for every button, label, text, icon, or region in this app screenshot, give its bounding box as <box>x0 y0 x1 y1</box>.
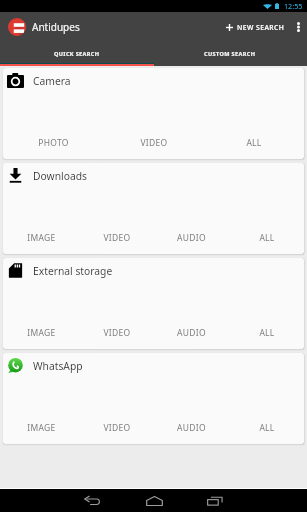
button[interactable]: ALL <box>229 322 304 344</box>
staticText: VIDEO <box>140 137 168 149</box>
button[interactable]: IMAGE <box>3 417 79 439</box>
button[interactable]: CUSTOM SEARCH <box>153 42 307 66</box>
button[interactable]: AUDIO <box>154 227 229 249</box>
staticText: Downloads <box>33 169 87 183</box>
staticText: Camera <box>33 74 71 88</box>
button[interactable]: QUICK SEARCH <box>0 42 153 66</box>
staticText: VIDEO <box>103 422 131 434</box>
staticText: NEW SEARCH <box>237 23 285 32</box>
button[interactable]: VIDEO <box>79 227 154 249</box>
button[interactable]: AUDIO <box>154 417 229 439</box>
button[interactable]: IMAGE <box>3 322 79 344</box>
button[interactable]: Home <box>138 489 170 512</box>
staticText: AUDIO <box>177 422 206 434</box>
button[interactable]: ALL <box>204 132 304 154</box>
button[interactable]: NEW SEARCH <box>221 16 290 39</box>
staticText: QUICK SEARCH <box>54 50 100 58</box>
button[interactable]: VIDEO <box>79 417 154 439</box>
staticText: VIDEO <box>103 327 131 339</box>
button[interactable]: WhatsApp <box>3 353 304 444</box>
staticText: IMAGE <box>27 327 56 339</box>
button[interactable]: Recent apps <box>199 489 231 512</box>
staticText: ALL <box>259 327 275 339</box>
button[interactable]: AUDIO <box>154 322 229 344</box>
staticText: 12:55 <box>284 1 303 11</box>
button[interactable]: Downloads <box>3 163 304 254</box>
staticText: IMAGE <box>27 232 56 244</box>
button[interactable]: ALL <box>229 417 304 439</box>
button[interactable]: ALL <box>229 227 304 249</box>
staticText: ALL <box>259 232 275 244</box>
button[interactable]: VIDEO <box>79 322 154 344</box>
staticText: IMAGE <box>27 422 56 434</box>
button[interactable]: External storage <box>3 258 304 349</box>
staticText: Antidupes <box>32 20 80 34</box>
staticText: External storage <box>33 264 113 278</box>
staticText: CUSTOM SEARCH <box>204 50 256 58</box>
staticText: ALL <box>259 422 275 434</box>
staticText: WhatsApp <box>33 359 83 373</box>
staticText: VIDEO <box>103 232 131 244</box>
button[interactable]: IMAGE <box>3 227 79 249</box>
button[interactable]: PHOTO <box>3 132 104 154</box>
button[interactable]: More options <box>290 12 307 42</box>
staticText: PHOTO <box>38 137 69 149</box>
button[interactable]: VIDEO <box>104 132 204 154</box>
staticText: AUDIO <box>177 327 206 339</box>
button[interactable]: Camera <box>3 68 304 159</box>
button[interactable]: Back <box>76 489 108 512</box>
staticText: AUDIO <box>177 232 206 244</box>
staticText: ALL <box>246 137 262 149</box>
